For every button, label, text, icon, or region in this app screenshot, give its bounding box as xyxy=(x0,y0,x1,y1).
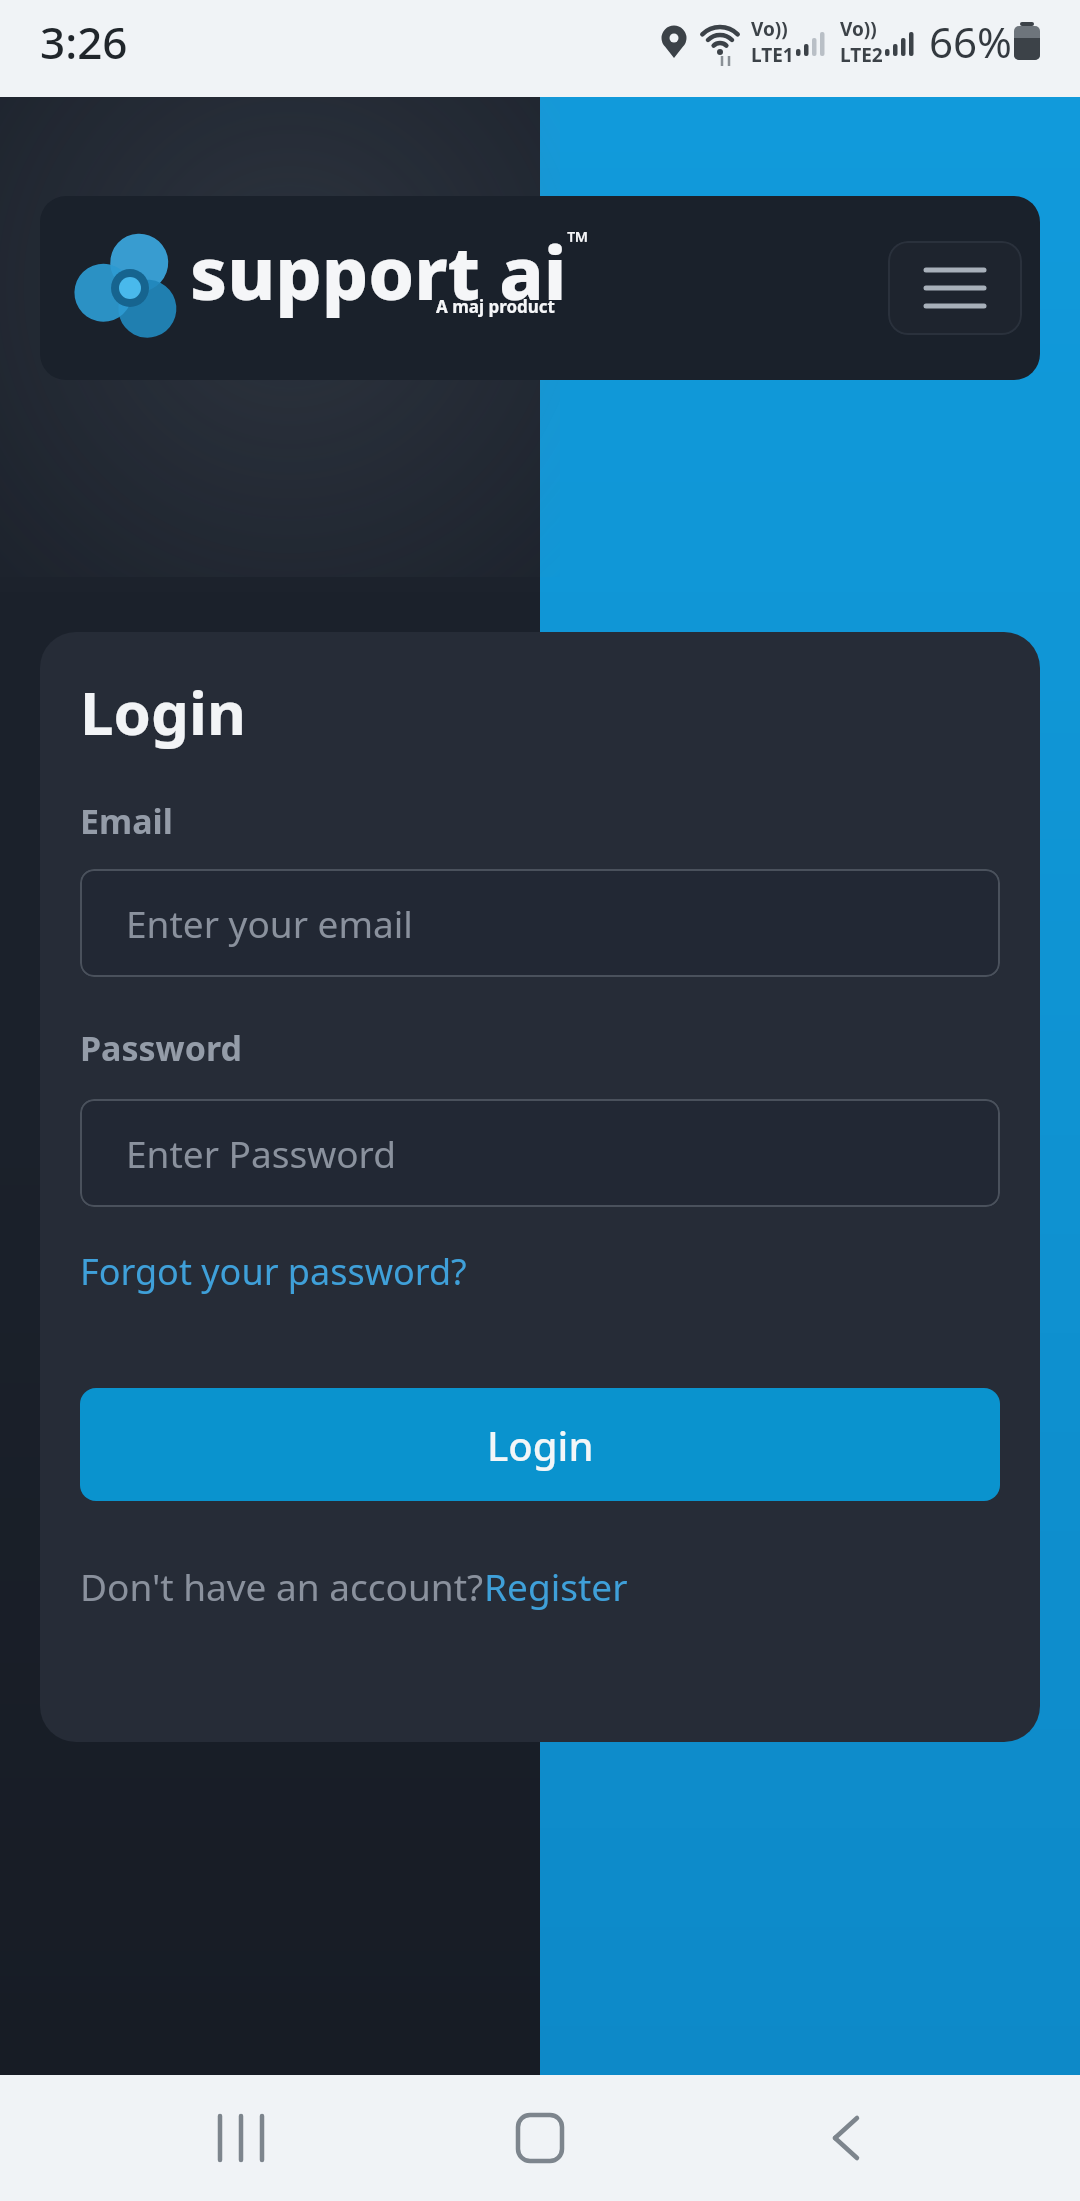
staticText: support ai xyxy=(190,222,567,321)
button[interactable]: Forgot your password? xyxy=(80,1247,467,1296)
staticText: Enter your email xyxy=(126,898,413,948)
button[interactable]: Enter Password xyxy=(80,1099,1000,1207)
staticText: Vo)) xyxy=(840,16,877,42)
button[interactable] xyxy=(801,2093,891,2183)
button[interactable] xyxy=(495,2093,585,2183)
staticText: A maj product xyxy=(436,295,555,318)
staticText: Vo)) xyxy=(751,16,788,42)
staticText: Don't have an account? xyxy=(80,1561,484,1611)
staticText: ™ xyxy=(567,222,589,260)
staticText: 66% xyxy=(929,13,1012,70)
staticText: Email xyxy=(80,798,173,844)
button[interactable] xyxy=(198,2093,288,2183)
staticText: Register xyxy=(484,1561,628,1611)
button[interactable]: Don't have an account? xyxy=(80,1561,628,1611)
staticText: 3:26 xyxy=(40,12,128,72)
staticText: Enter Password xyxy=(126,1128,396,1178)
button[interactable]: Enter your email xyxy=(80,869,1000,977)
button[interactable]: Login xyxy=(80,1388,1000,1501)
button[interactable] xyxy=(888,241,1022,335)
staticText: LTE2 xyxy=(840,42,883,68)
staticText: Login xyxy=(80,671,246,753)
staticText: Password xyxy=(80,1025,242,1071)
staticText: Login xyxy=(487,1418,594,1472)
staticText: LTE1 xyxy=(751,42,794,68)
